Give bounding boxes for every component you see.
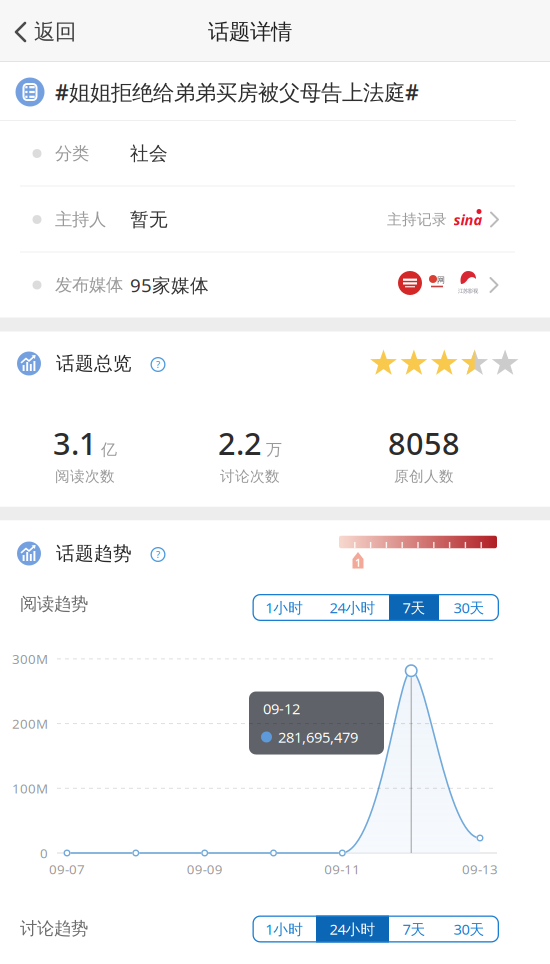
staticText: 3.1 [53, 423, 97, 463]
button[interactable]: 24小时 [316, 915, 389, 942]
staticText: 讨论次数 [220, 467, 280, 485]
button[interactable]: 主持记录 [350, 197, 500, 241]
staticText: 主持记录 [387, 210, 447, 228]
staticText: 亿 [101, 440, 117, 459]
staticText: ? [156, 548, 160, 561]
staticText: 网 [437, 275, 445, 285]
staticText: 100M [12, 779, 48, 797]
staticText: 暂无 [130, 208, 168, 231]
staticText: ? [156, 358, 160, 371]
staticText: 原创人数 [394, 467, 454, 485]
staticText: 万 [266, 440, 282, 459]
staticText: 30天 [453, 598, 484, 617]
button[interactable]: 1小时 [252, 915, 316, 942]
button[interactable]: 发布媒体 [0, 252, 550, 317]
staticText: 7天 [402, 919, 425, 939]
button[interactable]: 帮助 [150, 357, 165, 372]
staticText: 发布媒体 [55, 274, 123, 296]
staticText: #姐姐拒绝给弟弟买房被父母告上法庭# [55, 78, 419, 106]
staticText: 阅读次数 [55, 467, 115, 485]
button[interactable]: 1小时 [252, 594, 316, 621]
staticText: 30天 [453, 919, 484, 939]
staticText: sina [453, 210, 482, 229]
staticText: 阅读趋势 [20, 593, 88, 615]
staticText: 社会 [130, 142, 168, 165]
staticText: 09-12 [263, 699, 300, 718]
staticText: 1小时 [265, 598, 303, 617]
staticText: 95家媒体 [130, 273, 209, 297]
staticText: 300M [12, 650, 48, 668]
staticText: 1 [355, 555, 361, 570]
staticText: 09-09 [187, 860, 223, 878]
staticText: 8058 [388, 423, 460, 463]
staticText: 281,695,479 [278, 727, 358, 747]
staticText: 7天 [402, 598, 425, 617]
staticText: 话题趋势 [56, 542, 132, 565]
staticText: 2.2 [218, 423, 262, 463]
button[interactable]: 7天 [389, 594, 439, 621]
staticText: 200M [12, 715, 48, 732]
button[interactable]: 7天 [389, 915, 439, 942]
button[interactable]: 返回 [14, 10, 94, 54]
staticText: 09-07 [49, 860, 85, 878]
staticText: 返回 [34, 19, 76, 45]
staticText: 话题详情 [208, 19, 292, 45]
button[interactable]: 帮助 [150, 547, 165, 562]
staticText: 0 [40, 844, 48, 862]
button[interactable]: 24小时 [316, 594, 389, 621]
button[interactable]: 30天 [439, 594, 499, 621]
staticText: 24小时 [329, 919, 375, 939]
staticText: 话题总览 [56, 352, 132, 375]
staticText: 分类 [55, 143, 89, 164]
staticText: 讨论趋势 [20, 918, 88, 939]
staticText: 江苏影视 [458, 288, 478, 294]
staticText: 主持人 [55, 209, 106, 230]
staticText: 1小时 [265, 919, 303, 939]
staticText: 09-11 [324, 860, 360, 878]
staticText: 09-13 [462, 860, 498, 878]
staticText: 24小时 [329, 598, 375, 617]
button[interactable]: 30天 [439, 915, 499, 942]
